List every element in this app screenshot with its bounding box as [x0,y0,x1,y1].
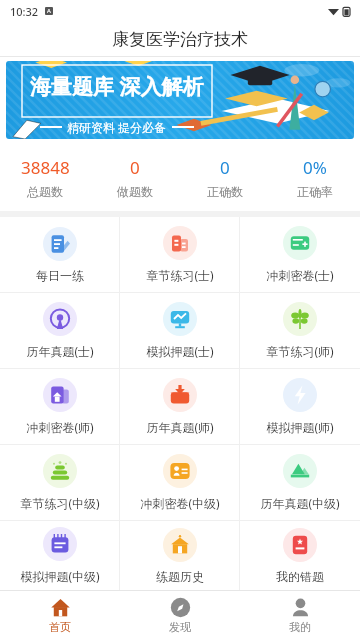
button[interactable]: 模拟押题(士) [120,293,240,368]
button[interactable]: 38848 [0,148,90,207]
button[interactable]: 发现 [120,591,240,640]
staticText: 历年真题(中级) [260,495,340,511]
button[interactable]: 我的 [240,591,360,640]
button[interactable]: 冲刺密卷(士) [240,217,360,292]
button[interactable]: 模拟押题(中级) [0,521,120,590]
button[interactable]: 章节练习(中级) [0,445,120,520]
button[interactable]: 0 [180,148,270,207]
button[interactable]: 章节练习(师) [240,293,360,368]
staticText: 冲刺密卷(中级) [140,495,220,511]
button[interactable]: 模拟押题(师) [240,369,360,444]
staticText: 首页 [49,620,71,634]
staticText: 38848 [21,156,70,179]
staticText: 正确数 [207,184,243,199]
button[interactable]: 海量题库 深入解析 [6,61,354,139]
button[interactable]: 冲刺密卷(中级) [120,445,240,520]
staticText: 章节练习(中级) [20,495,100,511]
staticText: 冲刺密卷(士) [266,267,334,283]
button[interactable]: 历年真题(师) [120,369,240,444]
staticText: 章节练习(士) [146,267,214,283]
staticText: 模拟押题(师) [266,419,334,435]
staticText: A [47,7,51,15]
staticText: 做题数 [117,184,153,199]
button[interactable]: 冲刺密卷(师) [0,369,120,444]
staticText: 我的错题 [276,569,324,584]
staticText: 10:32 [10,4,39,19]
staticText: 正确率 [297,184,333,199]
staticText: 历年真题(士) [26,343,94,359]
button[interactable]: 章节练习(士) [120,217,240,292]
staticText: 我的 [289,620,311,634]
staticText: 练题历史 [156,569,204,584]
staticText: 冲刺密卷(师) [26,419,94,435]
button[interactable]: 历年真题(士) [0,293,120,368]
staticText: 总题数 [27,184,63,199]
staticText: 模拟押题(士) [146,343,214,359]
button[interactable]: 0% [270,148,360,207]
staticText: 模拟押题(中级) [20,568,100,584]
staticText: 章节练习(师) [266,343,334,359]
staticText: 0 [220,156,230,179]
button[interactable]: 首页 [0,591,120,640]
button[interactable]: 历年真题(中级) [240,445,360,520]
button[interactable]: 我的错题 [240,521,360,590]
button[interactable]: 每日一练 [0,217,120,292]
button[interactable]: 练题历史 [120,521,240,590]
staticText: 每日一练 [36,268,84,283]
staticText: 历年真题(师) [146,419,214,435]
staticText: 发现 [169,620,191,634]
staticText: 0% [303,156,327,179]
staticText: 0 [130,156,140,179]
staticText: 精研资料 提分必备 [67,119,167,135]
button[interactable]: 0 [90,148,180,207]
staticText: 海量题库 深入解析 [30,72,204,101]
staticText: 康复医学治疗技术 [112,29,248,50]
